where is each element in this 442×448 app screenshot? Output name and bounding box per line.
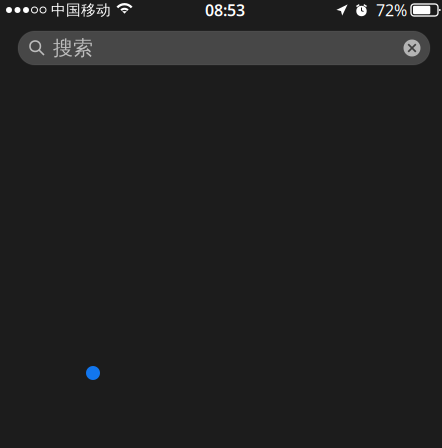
staticText: 08:53 xyxy=(205,0,245,21)
staticText: 72% xyxy=(376,0,407,21)
button[interactable]: 搜索 xyxy=(18,31,430,65)
staticText: 搜索 xyxy=(53,36,93,60)
staticText: 中国移动 xyxy=(51,1,111,19)
button[interactable]: Clear search text xyxy=(399,35,425,61)
